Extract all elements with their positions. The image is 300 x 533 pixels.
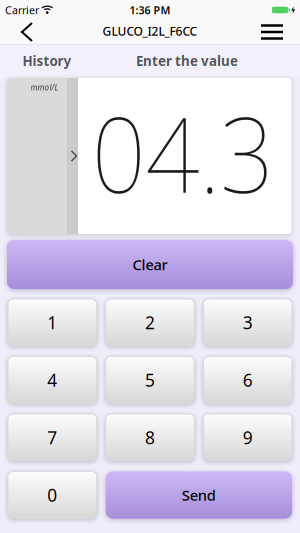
staticText: 6 (243, 368, 253, 391)
staticText: 7 (47, 426, 57, 449)
staticText: Carrier (5, 3, 39, 17)
staticText: 1:36 PM (129, 3, 170, 17)
button[interactable]: 0 (8, 471, 97, 518)
staticText: 3 (243, 311, 253, 334)
button[interactable]: 2 (106, 299, 194, 346)
button[interactable]: 7 (8, 414, 97, 461)
staticText: Clear (132, 255, 167, 274)
staticText: 0 (47, 483, 57, 506)
button[interactable]: 3 (203, 299, 292, 346)
button[interactable]: 4 (8, 356, 97, 403)
staticText: GLUCO_I2L_F6CC (102, 23, 197, 39)
button[interactable]: 9 (203, 414, 292, 461)
staticText: Enter the value (136, 52, 238, 70)
staticText: 5 (145, 368, 155, 391)
button[interactable]: 1 (8, 299, 97, 346)
button[interactable]: 8 (106, 414, 194, 461)
staticText: 04.3 (83, 83, 283, 221)
button[interactable]: Clear (7, 240, 293, 289)
staticText: 4 (47, 368, 57, 391)
button[interactable]: History (22, 52, 71, 70)
staticText: 9 (243, 426, 253, 449)
staticText: mmol/L (30, 82, 58, 93)
button[interactable]: Back (0, 20, 32, 44)
staticText: 1 (47, 311, 57, 334)
staticText: Send (182, 485, 216, 505)
staticText: History (22, 52, 71, 70)
button[interactable]: Menu (261, 24, 300, 40)
staticText: 2 (145, 311, 155, 334)
button[interactable]: Open history drawer (7, 78, 78, 234)
button[interactable]: 5 (106, 356, 194, 403)
button[interactable]: Send (106, 471, 292, 518)
staticText: 8 (145, 426, 155, 449)
button[interactable]: 6 (203, 356, 292, 403)
